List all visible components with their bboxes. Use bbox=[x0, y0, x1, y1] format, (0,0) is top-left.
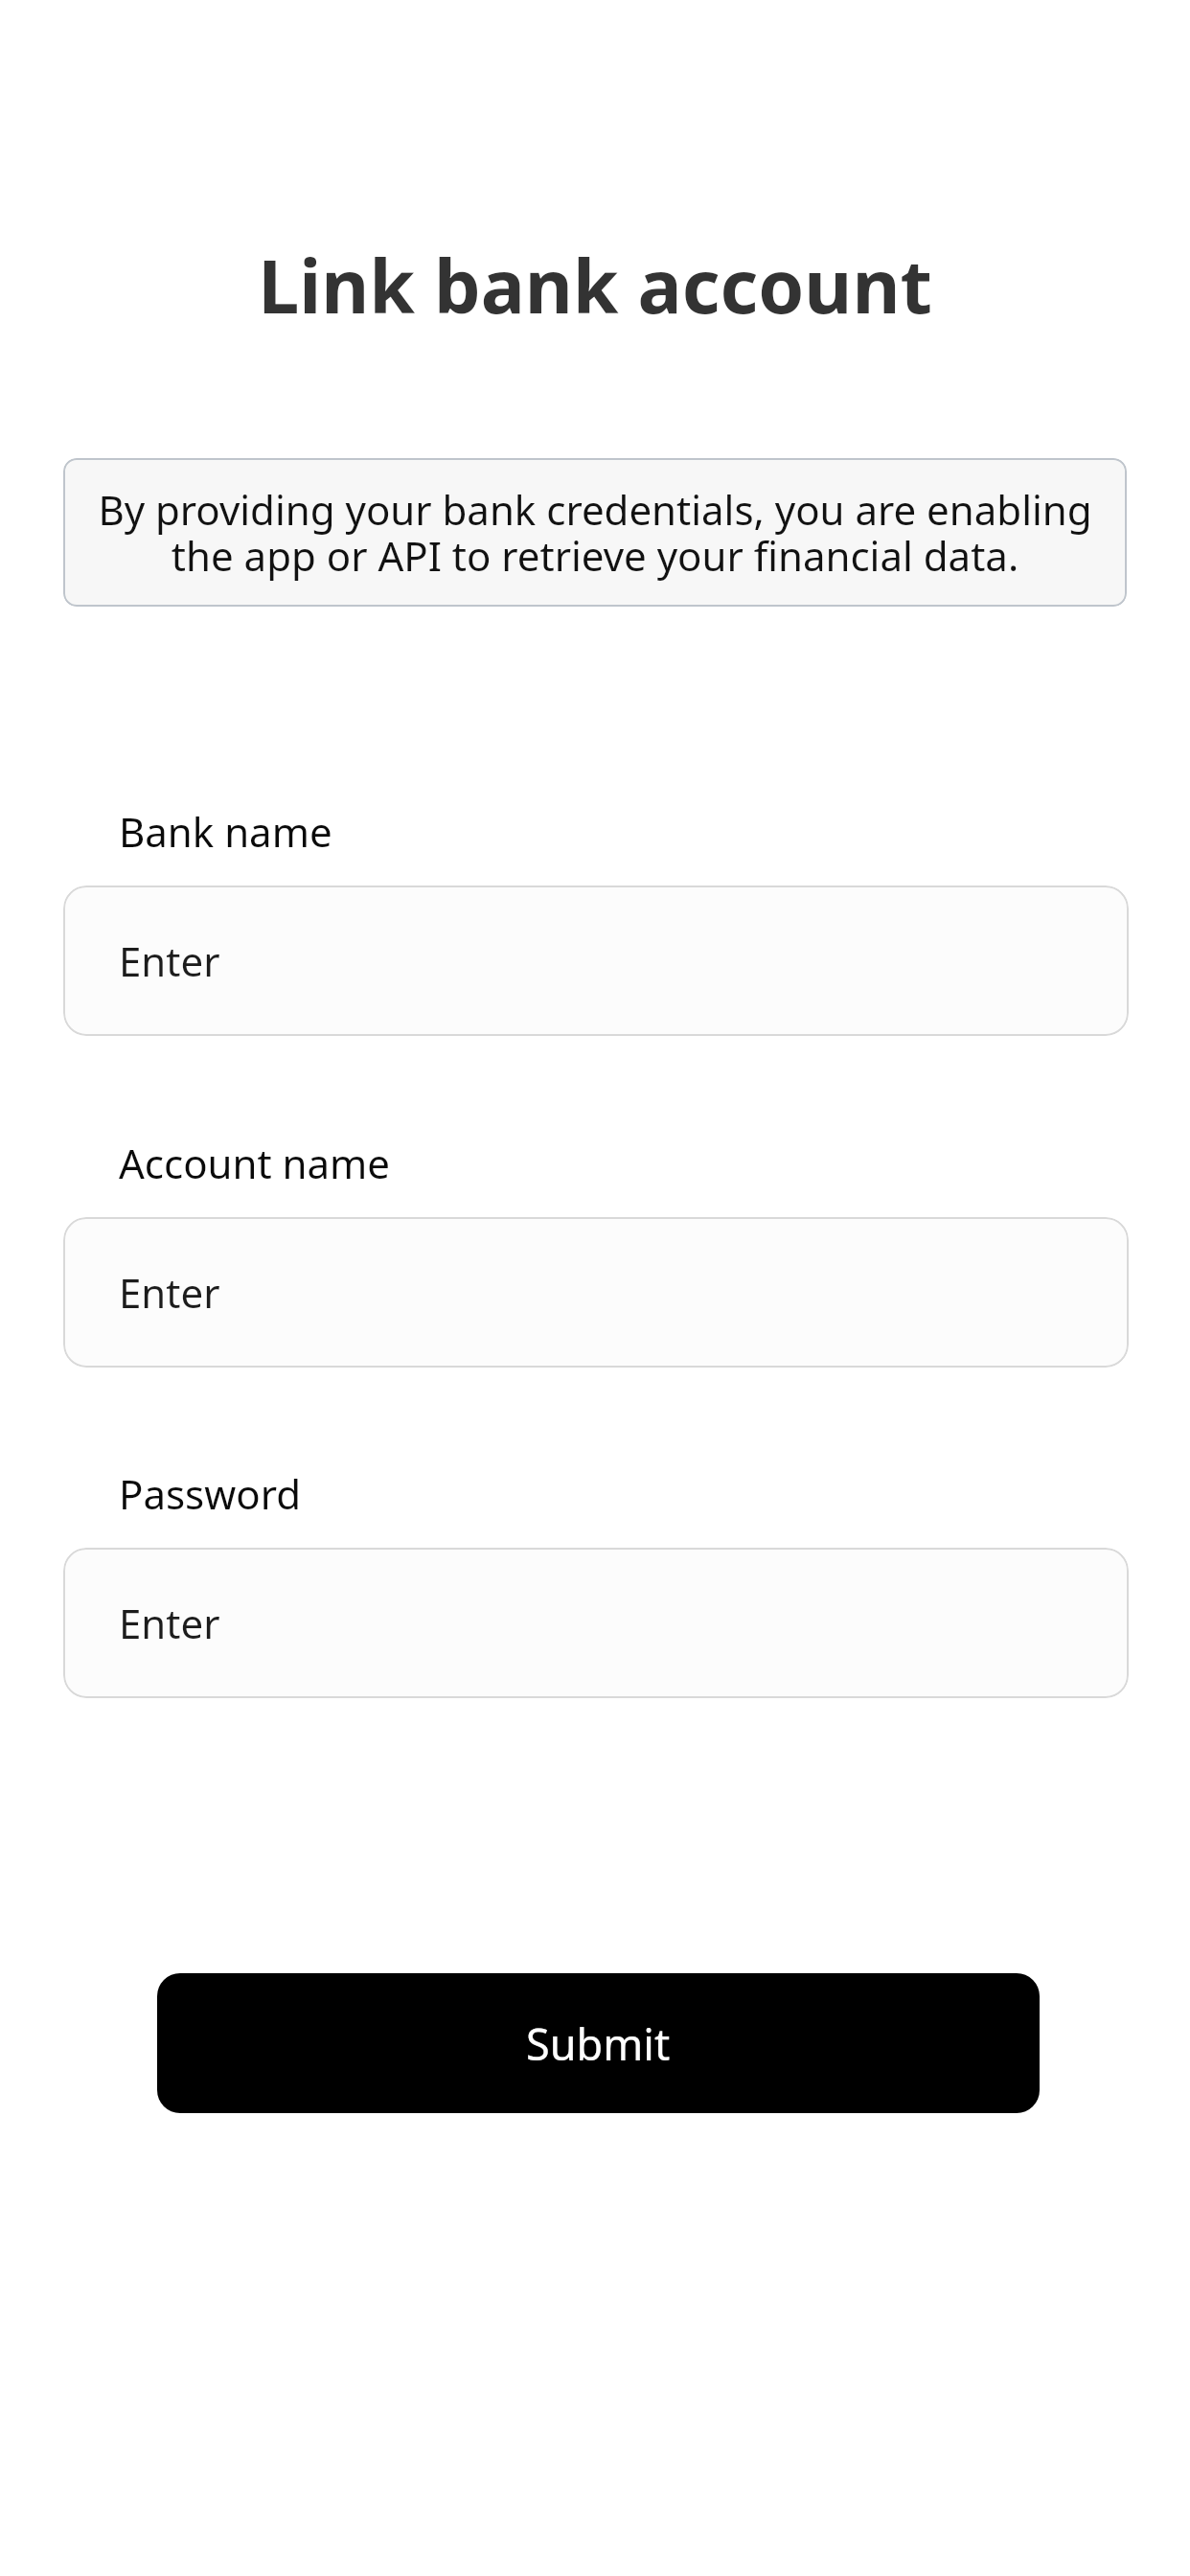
staticText: Password bbox=[119, 1466, 301, 1521]
button[interactable]: Submit bbox=[157, 1973, 1040, 2113]
button[interactable]: Password bbox=[63, 1548, 1129, 1698]
staticText: Submit bbox=[526, 2014, 671, 2073]
staticText: By providing your bank credentials, you … bbox=[92, 482, 1098, 583]
button[interactable]: Account name bbox=[63, 1217, 1129, 1368]
staticText: Enter bbox=[119, 933, 220, 988]
staticText: Account name bbox=[119, 1136, 391, 1190]
staticText: Enter bbox=[119, 1265, 220, 1320]
staticText: Enter bbox=[119, 1596, 220, 1650]
staticText: Link bank account bbox=[0, 235, 1190, 335]
staticText: Bank name bbox=[119, 804, 332, 859]
button[interactable]: Bank name bbox=[63, 885, 1129, 1036]
